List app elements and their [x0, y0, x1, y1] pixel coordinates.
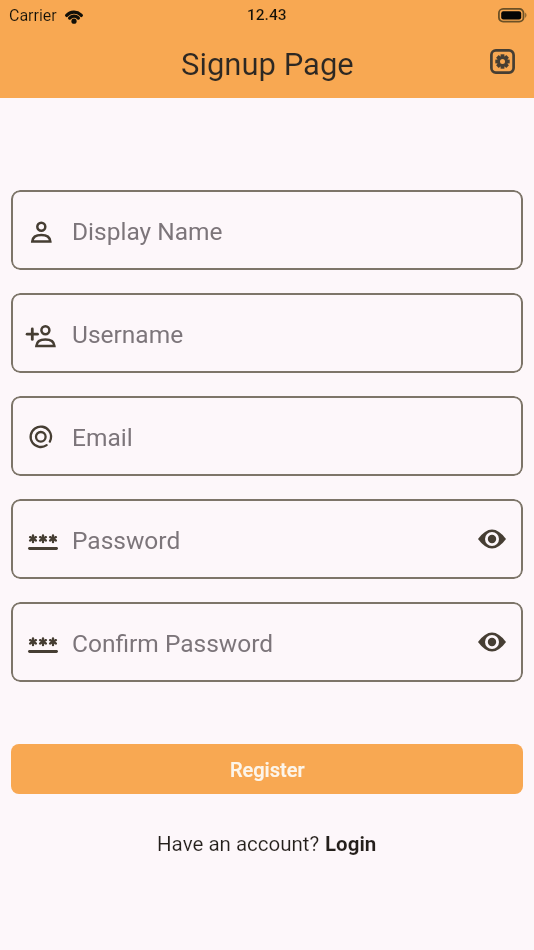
button[interactable]: Confirm Password — [11, 602, 523, 682]
staticText: Confirm Password — [72, 629, 274, 658]
staticText: Register — [230, 758, 305, 781]
button[interactable]: Register — [11, 744, 523, 794]
staticText: Signup Page — [181, 46, 354, 82]
staticText: Password — [72, 526, 181, 555]
button[interactable]: Login — [325, 832, 377, 856]
staticText: Username — [72, 320, 184, 349]
staticText: 12.43 — [247, 6, 287, 24]
button[interactable] — [477, 527, 507, 551]
button[interactable] — [477, 630, 507, 654]
staticText: Have an account? — [157, 832, 325, 856]
staticText: Login — [325, 832, 377, 856]
staticText: Email — [72, 423, 133, 452]
staticText: Display Name — [72, 217, 223, 246]
button[interactable]: Email — [11, 396, 523, 476]
staticText: Carrier — [9, 6, 57, 25]
button[interactable]: Username — [11, 293, 523, 373]
button[interactable] — [490, 49, 515, 74]
button[interactable]: Display Name — [11, 190, 523, 270]
button[interactable]: Password — [11, 499, 523, 579]
